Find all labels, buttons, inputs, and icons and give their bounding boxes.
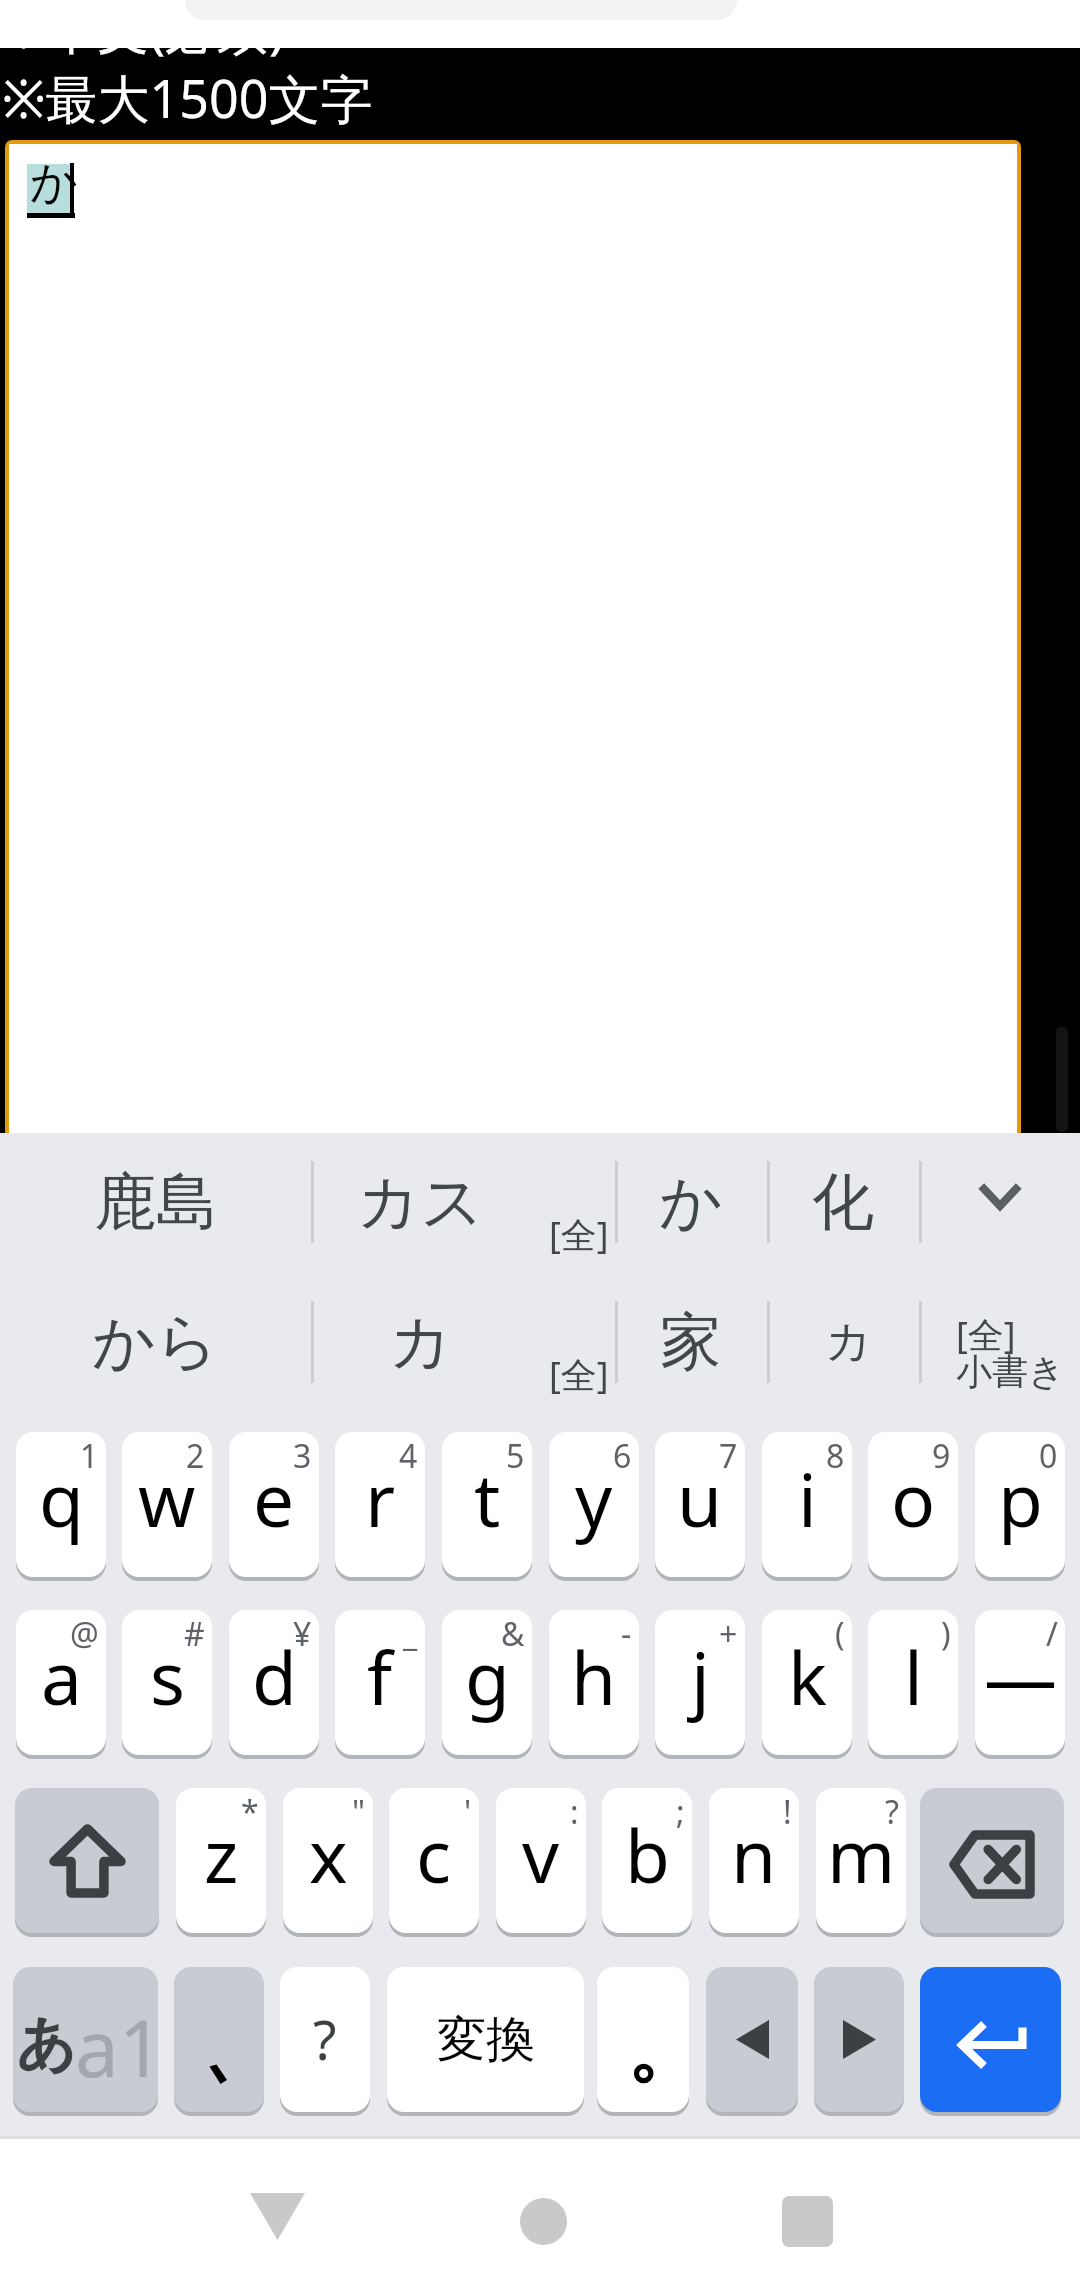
staticText: # xyxy=(184,1612,205,1656)
other: Move cursor left xyxy=(706,1967,798,2112)
staticText: l xyxy=(904,1627,923,1726)
button[interactable]: g xyxy=(442,1610,532,1755)
button[interactable]: h xyxy=(549,1610,639,1755)
button[interactable]: v xyxy=(496,1788,586,1933)
button[interactable]: p xyxy=(975,1432,1065,1577)
button[interactable]: カ xyxy=(773,1274,925,1410)
button[interactable]: n xyxy=(709,1788,799,1933)
staticText: ) xyxy=(941,1612,951,1656)
staticText: t xyxy=(474,1449,501,1548)
button[interactable]: z xyxy=(176,1788,266,1933)
staticText: c xyxy=(416,1805,452,1904)
button[interactable]: Switch input mode xyxy=(13,1967,158,2112)
staticText: 9 xyxy=(932,1434,951,1478)
button[interactable]: u xyxy=(655,1432,745,1577)
button[interactable]: Backspace xyxy=(920,1788,1064,1933)
button[interactable]: c xyxy=(389,1788,479,1933)
button[interactable]: y xyxy=(549,1432,639,1577)
staticText: 8 xyxy=(826,1434,845,1478)
button[interactable]: i xyxy=(762,1432,852,1577)
button[interactable]: s xyxy=(122,1610,212,1755)
button[interactable]: Home xyxy=(463,2177,623,2265)
other: Comma xyxy=(174,1967,264,2112)
button[interactable]: b xyxy=(602,1788,692,1933)
staticText: カス xyxy=(357,1163,484,1241)
button[interactable]: o xyxy=(868,1432,958,1577)
staticText: x xyxy=(309,1805,348,1904)
button[interactable]: a xyxy=(16,1610,106,1755)
button[interactable]: q xyxy=(16,1432,106,1577)
staticText: d xyxy=(252,1627,297,1726)
other: Move cursor right xyxy=(814,1967,904,2112)
staticText: - xyxy=(621,1612,632,1656)
staticText: u xyxy=(677,1449,723,1548)
staticText: [全] xyxy=(956,1310,1016,1359)
button[interactable]: w xyxy=(122,1432,212,1577)
button[interactable]: d xyxy=(229,1610,319,1755)
button[interactable]: More candidates xyxy=(919,1134,1080,1270)
button[interactable]: l xyxy=(868,1610,958,1755)
button[interactable]: Enter xyxy=(920,1967,1061,2112)
other: Backspace xyxy=(920,1788,1064,1933)
staticText: s xyxy=(150,1627,185,1726)
button[interactable]: 家 xyxy=(615,1274,767,1410)
button[interactable]: Move cursor left xyxy=(706,1967,798,2112)
staticText: 1 xyxy=(80,1434,99,1478)
button[interactable]: j xyxy=(655,1610,745,1755)
button[interactable]: — xyxy=(975,1610,1065,1755)
button[interactable]: Recent apps xyxy=(727,2177,887,2265)
staticText: & xyxy=(501,1612,525,1656)
staticText: ? xyxy=(313,2002,337,2076)
button[interactable]: 鹿島 xyxy=(0,1134,311,1270)
staticText: から xyxy=(92,1303,219,1381)
button[interactable]: ? xyxy=(280,1967,370,2112)
other: Period xyxy=(597,1967,689,2112)
button[interactable]: か xyxy=(615,1134,767,1270)
staticText: " xyxy=(352,1790,366,1834)
button[interactable]: カ xyxy=(311,1274,530,1410)
button[interactable]: k xyxy=(762,1610,852,1755)
staticText: @ xyxy=(70,1612,99,1656)
staticText: r xyxy=(365,1449,396,1548)
staticText: k xyxy=(788,1627,827,1726)
staticText: p xyxy=(998,1449,1043,1548)
button[interactable]: Hide keyboard xyxy=(197,2172,357,2260)
staticText: 4 xyxy=(399,1434,418,1478)
staticText: [全] xyxy=(549,1210,609,1259)
staticText: / xyxy=(1046,1612,1058,1656)
staticText: — xyxy=(984,1627,1057,1726)
button[interactable]: カス xyxy=(311,1134,530,1270)
button[interactable]: 変換 xyxy=(387,1967,584,2112)
staticText: 2 xyxy=(186,1434,205,1478)
button[interactable]: r xyxy=(335,1432,425,1577)
staticText: [全] xyxy=(549,1350,609,1399)
button[interactable]: Period xyxy=(597,1967,689,2112)
button[interactable]: m xyxy=(816,1788,906,1933)
button[interactable]: f xyxy=(335,1610,425,1755)
staticText: 6 xyxy=(613,1434,632,1478)
button[interactable]: Shift xyxy=(15,1788,159,1933)
staticText: g xyxy=(465,1627,510,1726)
staticText: z xyxy=(204,1805,239,1904)
button[interactable]: Comma xyxy=(174,1967,264,2112)
button[interactable]: から xyxy=(0,1274,311,1410)
other: Enter xyxy=(920,1967,1061,2112)
staticText: ; xyxy=(676,1790,685,1834)
staticText: か xyxy=(659,1163,723,1241)
staticText: カ xyxy=(389,1303,453,1381)
staticText: 3 xyxy=(293,1434,312,1478)
button[interactable]: t xyxy=(442,1432,532,1577)
other: Switch input mode xyxy=(13,1967,158,2112)
button[interactable]: Move cursor right xyxy=(814,1967,904,2112)
staticText: 5 xyxy=(506,1434,525,1478)
staticText: 小書き xyxy=(956,1349,1065,1394)
button[interactable]: 化 xyxy=(767,1134,919,1270)
button[interactable]: Small kana xyxy=(919,1274,1080,1410)
button[interactable]: x xyxy=(283,1788,373,1933)
staticText: w xyxy=(138,1449,196,1548)
staticText: f xyxy=(367,1627,393,1726)
staticText: a xyxy=(41,1627,82,1726)
button[interactable]: e xyxy=(229,1432,319,1577)
staticText: ? xyxy=(885,1790,899,1834)
staticText: ' xyxy=(464,1790,472,1834)
